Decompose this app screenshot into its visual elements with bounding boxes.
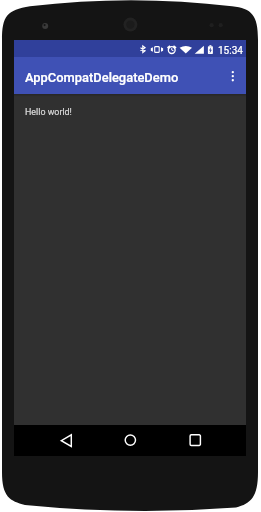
- staticText: 15:34: [218, 45, 243, 57]
- staticText: AppCompatDelegateDemo: [25, 70, 179, 85]
- staticText: Hello world!: [25, 107, 72, 117]
- button[interactable]: More options: [222, 65, 244, 87]
- button[interactable]: Back: [51, 428, 80, 457]
- button[interactable]: Recent apps: [181, 428, 210, 457]
- button[interactable]: Home: [116, 428, 145, 457]
